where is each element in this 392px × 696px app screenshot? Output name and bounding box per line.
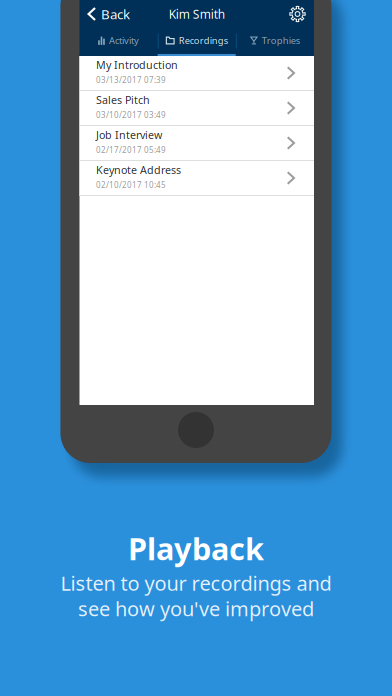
- staticText: 03:49: [144, 109, 166, 120]
- button[interactable]: Recordings: [158, 28, 236, 56]
- staticText: 03/10/2017: [96, 109, 142, 120]
- staticText: 10:45: [144, 179, 166, 190]
- staticText: see how you've improved: [78, 595, 314, 622]
- staticText: Job Interview: [96, 128, 162, 142]
- button[interactable]: Sales Pitch: [79, 91, 314, 126]
- button[interactable]: Trophies: [236, 28, 314, 56]
- staticText: Sales Pitch: [96, 93, 150, 107]
- staticText: Playback: [128, 528, 264, 569]
- button[interactable]: My Introduction: [79, 56, 314, 91]
- staticText: 02/17/2017: [96, 144, 142, 155]
- staticText: Trophies: [262, 34, 300, 47]
- button[interactable]: Back: [79, 0, 138, 28]
- button[interactable]: Activity: [79, 28, 158, 56]
- button[interactable]: Settings: [279, 0, 314, 28]
- staticText: Back: [101, 5, 130, 23]
- staticText: 02/10/2017: [96, 179, 142, 190]
- staticText: Listen to your recordings and: [60, 570, 331, 596]
- staticText: 03/13/2017: [96, 74, 142, 85]
- staticText: 07:39: [144, 74, 166, 85]
- button[interactable]: Keynote Address: [79, 161, 314, 196]
- staticText: 05:49: [144, 144, 166, 155]
- staticText: Recordings: [179, 34, 228, 47]
- staticText: Keynote Address: [96, 163, 181, 177]
- button[interactable]: Job Interview: [79, 126, 314, 161]
- staticText: My Introduction: [96, 58, 178, 72]
- staticText: Activity: [109, 34, 139, 47]
- staticText: Kim Smith: [169, 6, 225, 22]
